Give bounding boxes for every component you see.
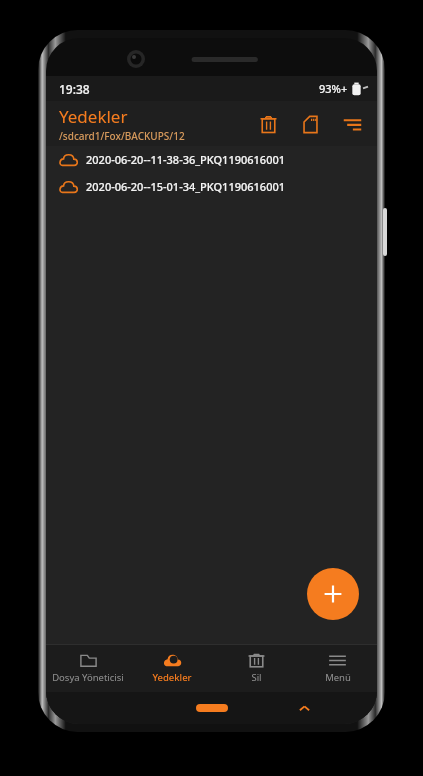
staticText: 2020-06-20--11-38-36_PKQ1190616001 [86,152,286,167]
staticText: Yedekler [59,105,128,128]
staticText: 2020-06-20--15-01-34_PKQ1190616001 [86,179,286,194]
button[interactable]: Sil [214,649,298,688]
button[interactable]: Home [196,704,228,712]
button[interactable]: SD card [295,109,325,139]
button[interactable]: 2020-06-20--11-38-36_PKQ1190616001 [46,146,377,173]
staticText: Dosya Yöneticisi [52,671,124,684]
button[interactable]: Sort [337,109,367,139]
button[interactable]: Dosya Yöneticisi [46,649,130,688]
button[interactable]: 2020-06-20--15-01-34_PKQ1190616001 [46,173,377,200]
button[interactable]: Menü [298,649,377,688]
staticText: Menü [325,671,351,684]
staticText: 19:38 [59,81,90,97]
button[interactable]: Add backup [307,568,359,620]
button[interactable]: Yedekler [130,649,214,688]
staticText: Sil [251,671,262,684]
button[interactable]: Delete [253,109,283,139]
staticText: /sdcard1/Fox/BACKUPS/12 [59,129,185,143]
staticText: 93%+ [319,81,348,96]
staticText: Yedekler [152,671,192,684]
button[interactable]: Back [293,697,315,719]
